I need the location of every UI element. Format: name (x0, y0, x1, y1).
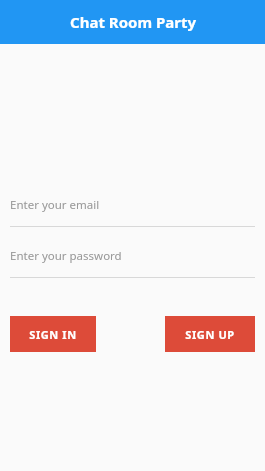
staticText: SIGN UP (185, 327, 235, 342)
button[interactable]: SIGN IN (10, 316, 96, 352)
button[interactable]: SIGN UP (165, 316, 255, 352)
staticText: Chat Room Party (70, 12, 196, 32)
button[interactable]: Enter your password (10, 244, 255, 278)
button[interactable]: Enter your email (10, 193, 255, 227)
staticText: SIGN IN (29, 327, 77, 342)
staticText: Enter your email (10, 197, 100, 213)
staticText: Enter your password (10, 248, 122, 264)
